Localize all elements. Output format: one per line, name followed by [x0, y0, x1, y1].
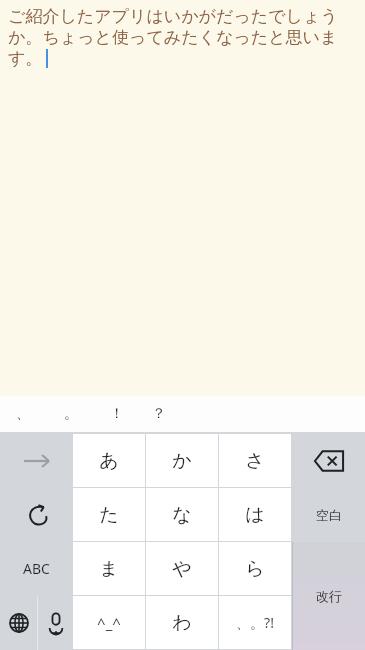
staticText: ABC [23, 559, 50, 578]
staticText: ご紹介したアプリはいかがだったでしょう [8, 6, 338, 27]
button[interactable]: Switch language [0, 596, 37, 650]
button[interactable]: か [146, 434, 219, 488]
staticText: な [172, 503, 192, 527]
button[interactable]: 、。?! [219, 596, 292, 650]
button[interactable]: ご紹介したアプリはいかがだったでしょう [0, 0, 365, 396]
staticText: 改行 [316, 588, 342, 604]
staticText: か。ちょっと使ってみたくなったと思いま [8, 27, 338, 48]
button[interactable]: Backspace [292, 434, 365, 488]
staticText: や [172, 557, 192, 581]
staticText: ^_^ [97, 613, 121, 633]
button[interactable]: 。 [46, 396, 96, 432]
staticText: ま [99, 557, 119, 581]
button[interactable]: 、 [0, 396, 46, 432]
button[interactable]: 改行 [292, 542, 365, 650]
button[interactable]: Cursor right [0, 434, 73, 488]
staticText: ！ [110, 405, 124, 423]
button[interactable]: は [219, 488, 292, 542]
staticText: 空白 [316, 507, 342, 523]
button[interactable]: わ [146, 596, 219, 650]
button[interactable]: や [146, 542, 219, 596]
button[interactable]: ABC [0, 542, 73, 596]
button[interactable]: た [73, 488, 146, 542]
staticText: ら [245, 557, 265, 581]
button[interactable]: 空白 [292, 488, 365, 542]
button[interactable]: ！ [96, 396, 138, 432]
staticText: わ [172, 611, 192, 635]
staticText: さ [245, 449, 265, 473]
button[interactable]: あ [73, 434, 146, 488]
staticText: 、 [16, 405, 30, 423]
staticText: は [245, 503, 265, 527]
button[interactable]: な [146, 488, 219, 542]
staticText: 、。?! [236, 613, 274, 632]
staticText: あ [99, 449, 119, 473]
button[interactable]: Undo [0, 488, 73, 542]
button[interactable]: Voice input [38, 596, 73, 650]
button[interactable]: ま [73, 542, 146, 596]
staticText: す。 [8, 48, 43, 69]
staticText: か [172, 449, 192, 473]
staticText: 。 [64, 405, 78, 423]
button[interactable]: ^_^ [73, 596, 146, 650]
button[interactable]: さ [219, 434, 292, 488]
staticText: た [99, 503, 119, 527]
button[interactable]: ら [219, 542, 292, 596]
button[interactable]: ？ [138, 396, 180, 432]
staticText: ？ [152, 405, 166, 423]
